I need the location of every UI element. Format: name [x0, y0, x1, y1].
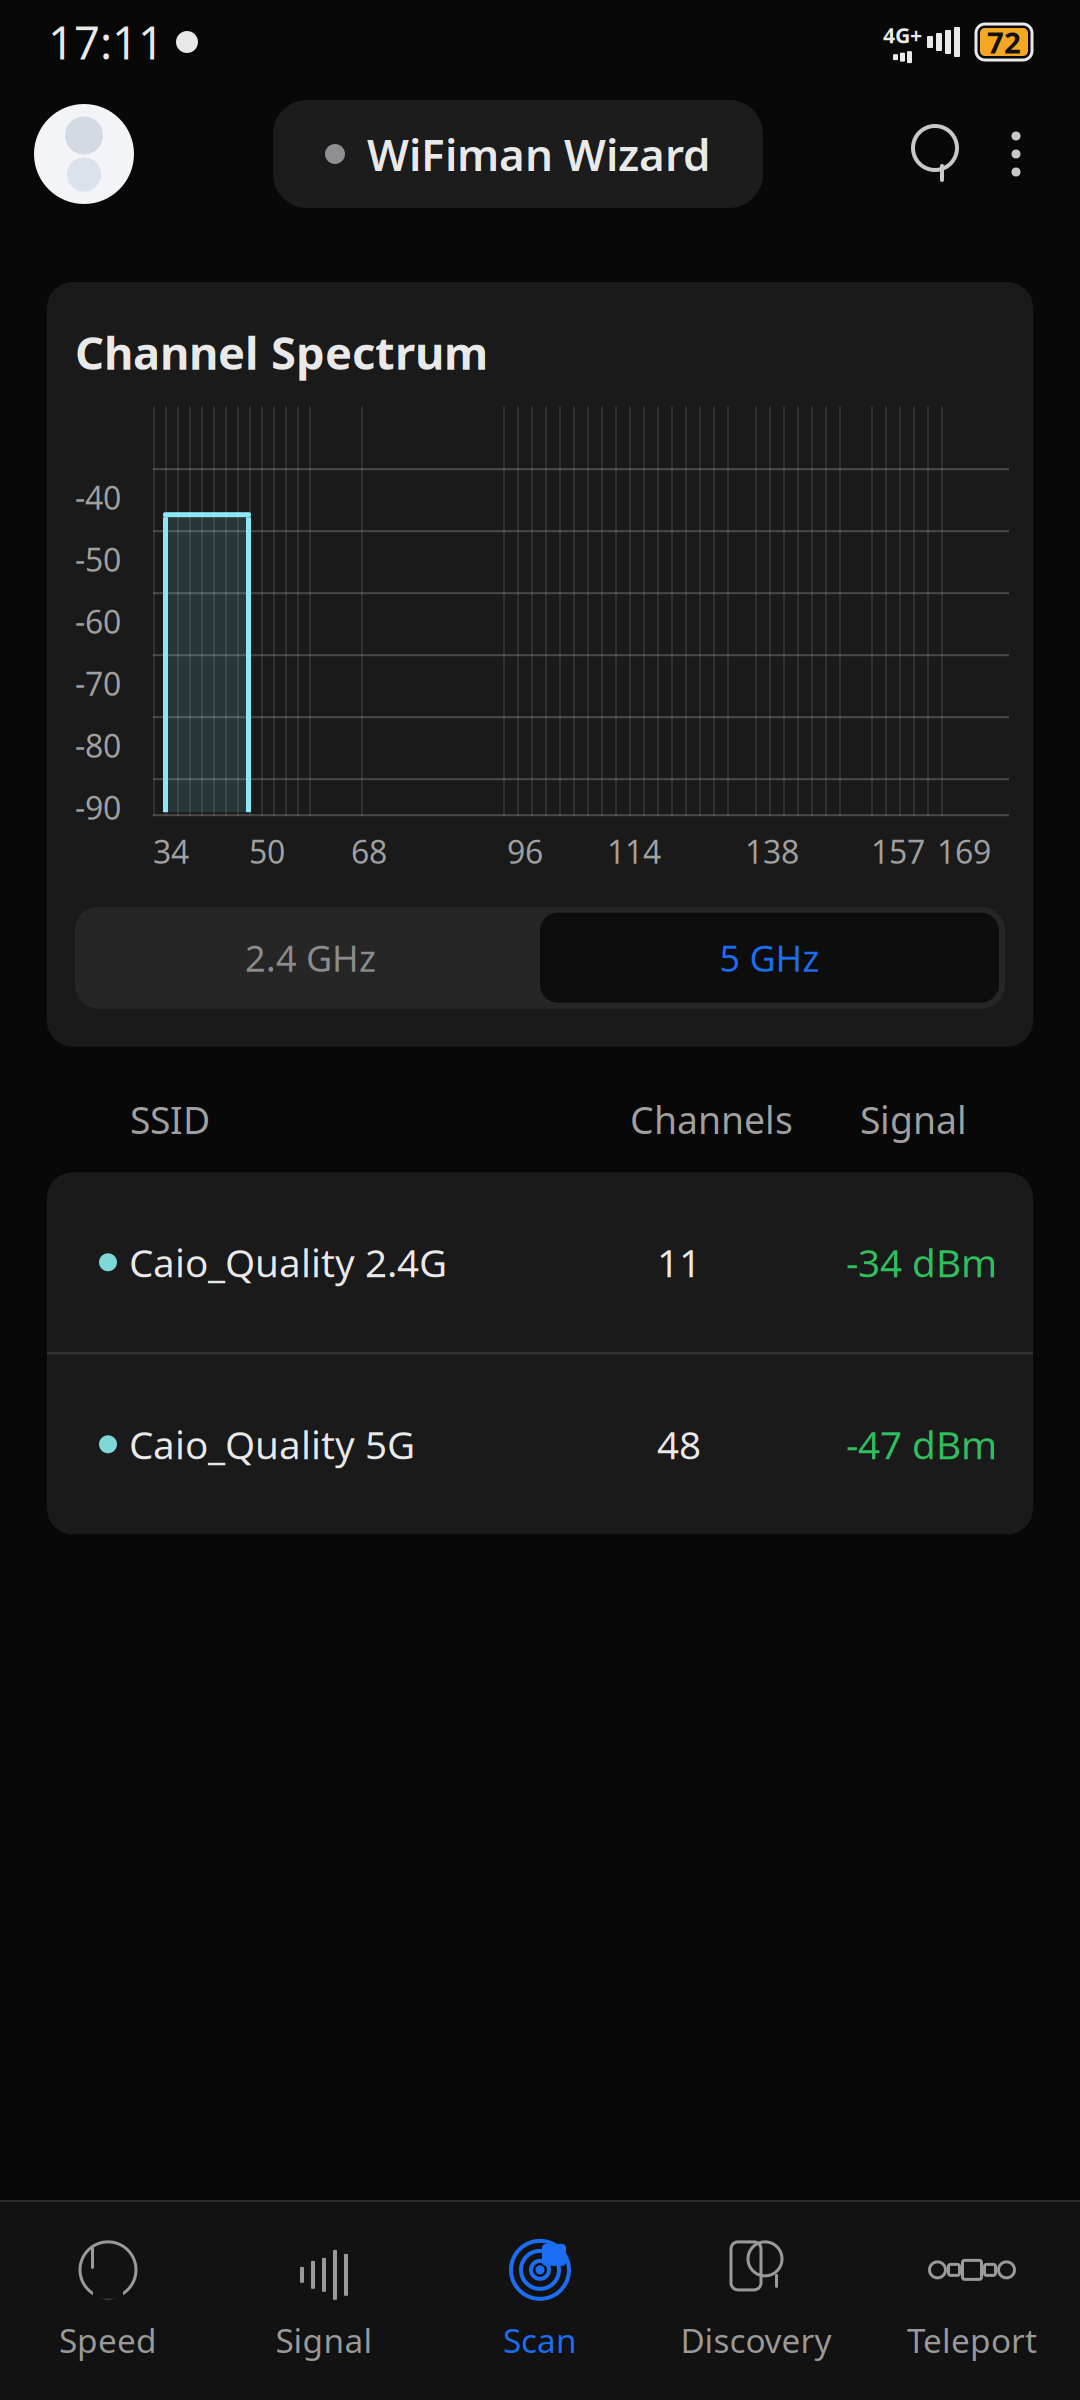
staticText: 11 — [657, 1237, 701, 1288]
staticText: 4G+ — [883, 21, 922, 49]
staticText: -50 — [75, 538, 121, 581]
button[interactable]: Caio_Quality 5G — [47, 1354, 1033, 1534]
button[interactable]: More options — [980, 115, 1052, 193]
staticText: -90 — [75, 786, 121, 829]
button[interactable]: WiFiman Wizard — [273, 100, 763, 208]
staticText: Discovery — [680, 2318, 831, 2362]
staticText: -34 dBm — [846, 1237, 997, 1288]
staticText: 169 — [937, 830, 991, 873]
staticText: -60 — [75, 600, 121, 643]
staticText: Channels — [630, 1095, 793, 1144]
button[interactable]: Scan — [432, 2202, 648, 2400]
staticText: 2.4 GHz — [245, 934, 376, 982]
staticText: 68 — [351, 830, 387, 873]
staticText: -40 — [75, 476, 121, 519]
staticText: 72 — [987, 22, 1021, 61]
staticText: 96 — [507, 830, 543, 873]
staticText: 48 — [657, 1419, 701, 1470]
staticText: -70 — [75, 662, 121, 705]
staticText: -47 dBm — [846, 1419, 997, 1470]
staticText: Signal — [860, 1095, 967, 1144]
staticText: Scan — [503, 2318, 577, 2362]
staticText: 17:11 — [48, 12, 164, 72]
button[interactable]: Profile — [34, 104, 134, 204]
button[interactable]: Teleport — [864, 2202, 1080, 2400]
staticText: Caio_Quality 5G — [129, 1419, 415, 1470]
staticText: Caio_Quality 2.4G — [129, 1237, 447, 1288]
staticText: 5 GHz — [719, 934, 819, 982]
staticText: 50 — [249, 830, 285, 873]
button[interactable]: 2.4 GHz — [81, 913, 540, 1003]
button[interactable]: 5 GHz — [540, 913, 999, 1003]
staticText: Speed — [59, 2318, 157, 2362]
button[interactable]: Search — [902, 115, 980, 193]
staticText: 34 — [153, 830, 189, 873]
button[interactable]: Speed — [0, 2202, 216, 2400]
staticText: 114 — [607, 830, 661, 873]
button[interactable]: Caio_Quality 2.4G — [47, 1172, 1033, 1352]
button[interactable]: Signal — [216, 2202, 432, 2400]
staticText: SSID — [130, 1095, 210, 1144]
staticText: 157 — [871, 830, 925, 873]
staticText: Teleport — [907, 2318, 1037, 2362]
staticText: Channel Spectrum — [75, 322, 488, 382]
staticText: WiFiman Wizard — [367, 125, 711, 183]
staticText: -80 — [75, 724, 121, 767]
button[interactable]: Discovery — [648, 2202, 864, 2400]
staticText: 138 — [745, 830, 799, 873]
staticText: Signal — [275, 2318, 372, 2362]
